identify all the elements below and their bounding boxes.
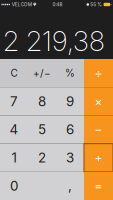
- staticText: 3: [66, 150, 74, 166]
- button[interactable]: −: [84, 115, 113, 144]
- button[interactable]: 6: [56, 115, 84, 144]
- staticText: +: [94, 150, 102, 165]
- staticText: 2: [38, 150, 46, 166]
- staticText: 2 219,38: [3, 24, 105, 58]
- staticText: 8: [38, 93, 46, 109]
- staticText: 7: [10, 93, 18, 109]
- button[interactable]: ×: [84, 87, 113, 115]
- button[interactable]: 7: [0, 87, 28, 115]
- staticText: VELCOM: [12, 2, 32, 7]
- staticText: 6: [66, 121, 74, 137]
- button[interactable]: %: [56, 59, 84, 87]
- button[interactable]: 4: [0, 115, 28, 144]
- staticText: ×: [94, 94, 102, 108]
- staticText: 0: [10, 178, 18, 194]
- staticText: 9: [66, 93, 74, 109]
- staticText: %: [65, 67, 75, 79]
- staticText: 0:48: [52, 2, 62, 7]
- button[interactable]: 1: [0, 144, 28, 172]
- button[interactable]: 0: [0, 172, 56, 200]
- button[interactable]: 2: [28, 144, 56, 172]
- staticText: 1: [11, 150, 16, 166]
- button[interactable]: +: [84, 144, 113, 172]
- button[interactable]: 9: [56, 87, 84, 115]
- staticText: C: [10, 67, 17, 79]
- button[interactable]: 8: [28, 87, 56, 115]
- staticText: =: [94, 179, 102, 193]
- staticText: +/−: [33, 67, 51, 79]
- button[interactable]: ÷: [84, 59, 113, 87]
- staticText: 5: [38, 121, 46, 137]
- button[interactable]: =: [84, 172, 113, 200]
- button[interactable]: 3: [56, 144, 84, 172]
- button[interactable]: C: [0, 59, 28, 87]
- button[interactable]: +/−: [28, 59, 56, 87]
- staticText: ,: [68, 178, 72, 194]
- staticText: −: [94, 122, 102, 137]
- staticText: 55 %: [90, 2, 102, 7]
- button[interactable]: 5: [28, 115, 56, 144]
- staticText: 4: [9, 121, 18, 137]
- staticText: ÷: [94, 66, 102, 80]
- button[interactable]: ,: [56, 172, 84, 200]
